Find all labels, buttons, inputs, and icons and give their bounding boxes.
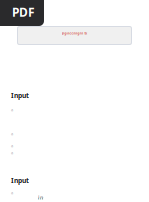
- staticText: Input: [11, 176, 29, 185]
- staticText: a: [11, 107, 13, 112]
- staticText: a: [11, 143, 13, 148]
- staticText: a: [11, 190, 13, 195]
- button[interactable]: PDF: [0, 0, 44, 26]
- staticText: in: [38, 194, 43, 201]
- staticText: Input: [11, 91, 29, 100]
- staticText: PDF: [12, 4, 35, 20]
- staticText: a: [11, 131, 13, 136]
- staticText: Engineering/in tk: [61, 32, 87, 35]
- staticText: a: [11, 150, 13, 155]
